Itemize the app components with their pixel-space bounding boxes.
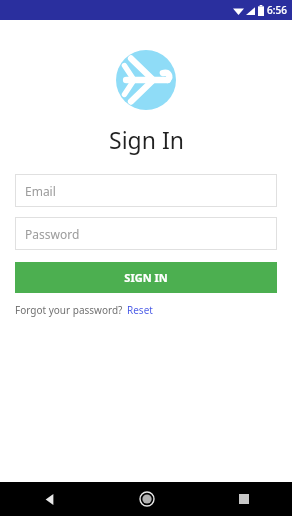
staticText: Sign In: [109, 124, 184, 155]
button[interactable]: Email: [15, 174, 277, 207]
staticText: Reset: [127, 303, 153, 317]
button[interactable]: Password: [15, 217, 277, 250]
button[interactable]: Home: [98, 482, 195, 516]
button[interactable]: SIGN IN: [15, 262, 277, 293]
staticText: Email: [25, 183, 56, 199]
staticText: Password: [25, 226, 80, 242]
button[interactable]: Reset: [127, 303, 153, 317]
button[interactable]: Back: [0, 482, 98, 516]
staticText: 6:56: [267, 3, 287, 17]
button[interactable]: Recent apps: [195, 482, 292, 516]
staticText: Forgot your password?: [15, 303, 123, 317]
staticText: SIGN IN: [124, 270, 168, 285]
